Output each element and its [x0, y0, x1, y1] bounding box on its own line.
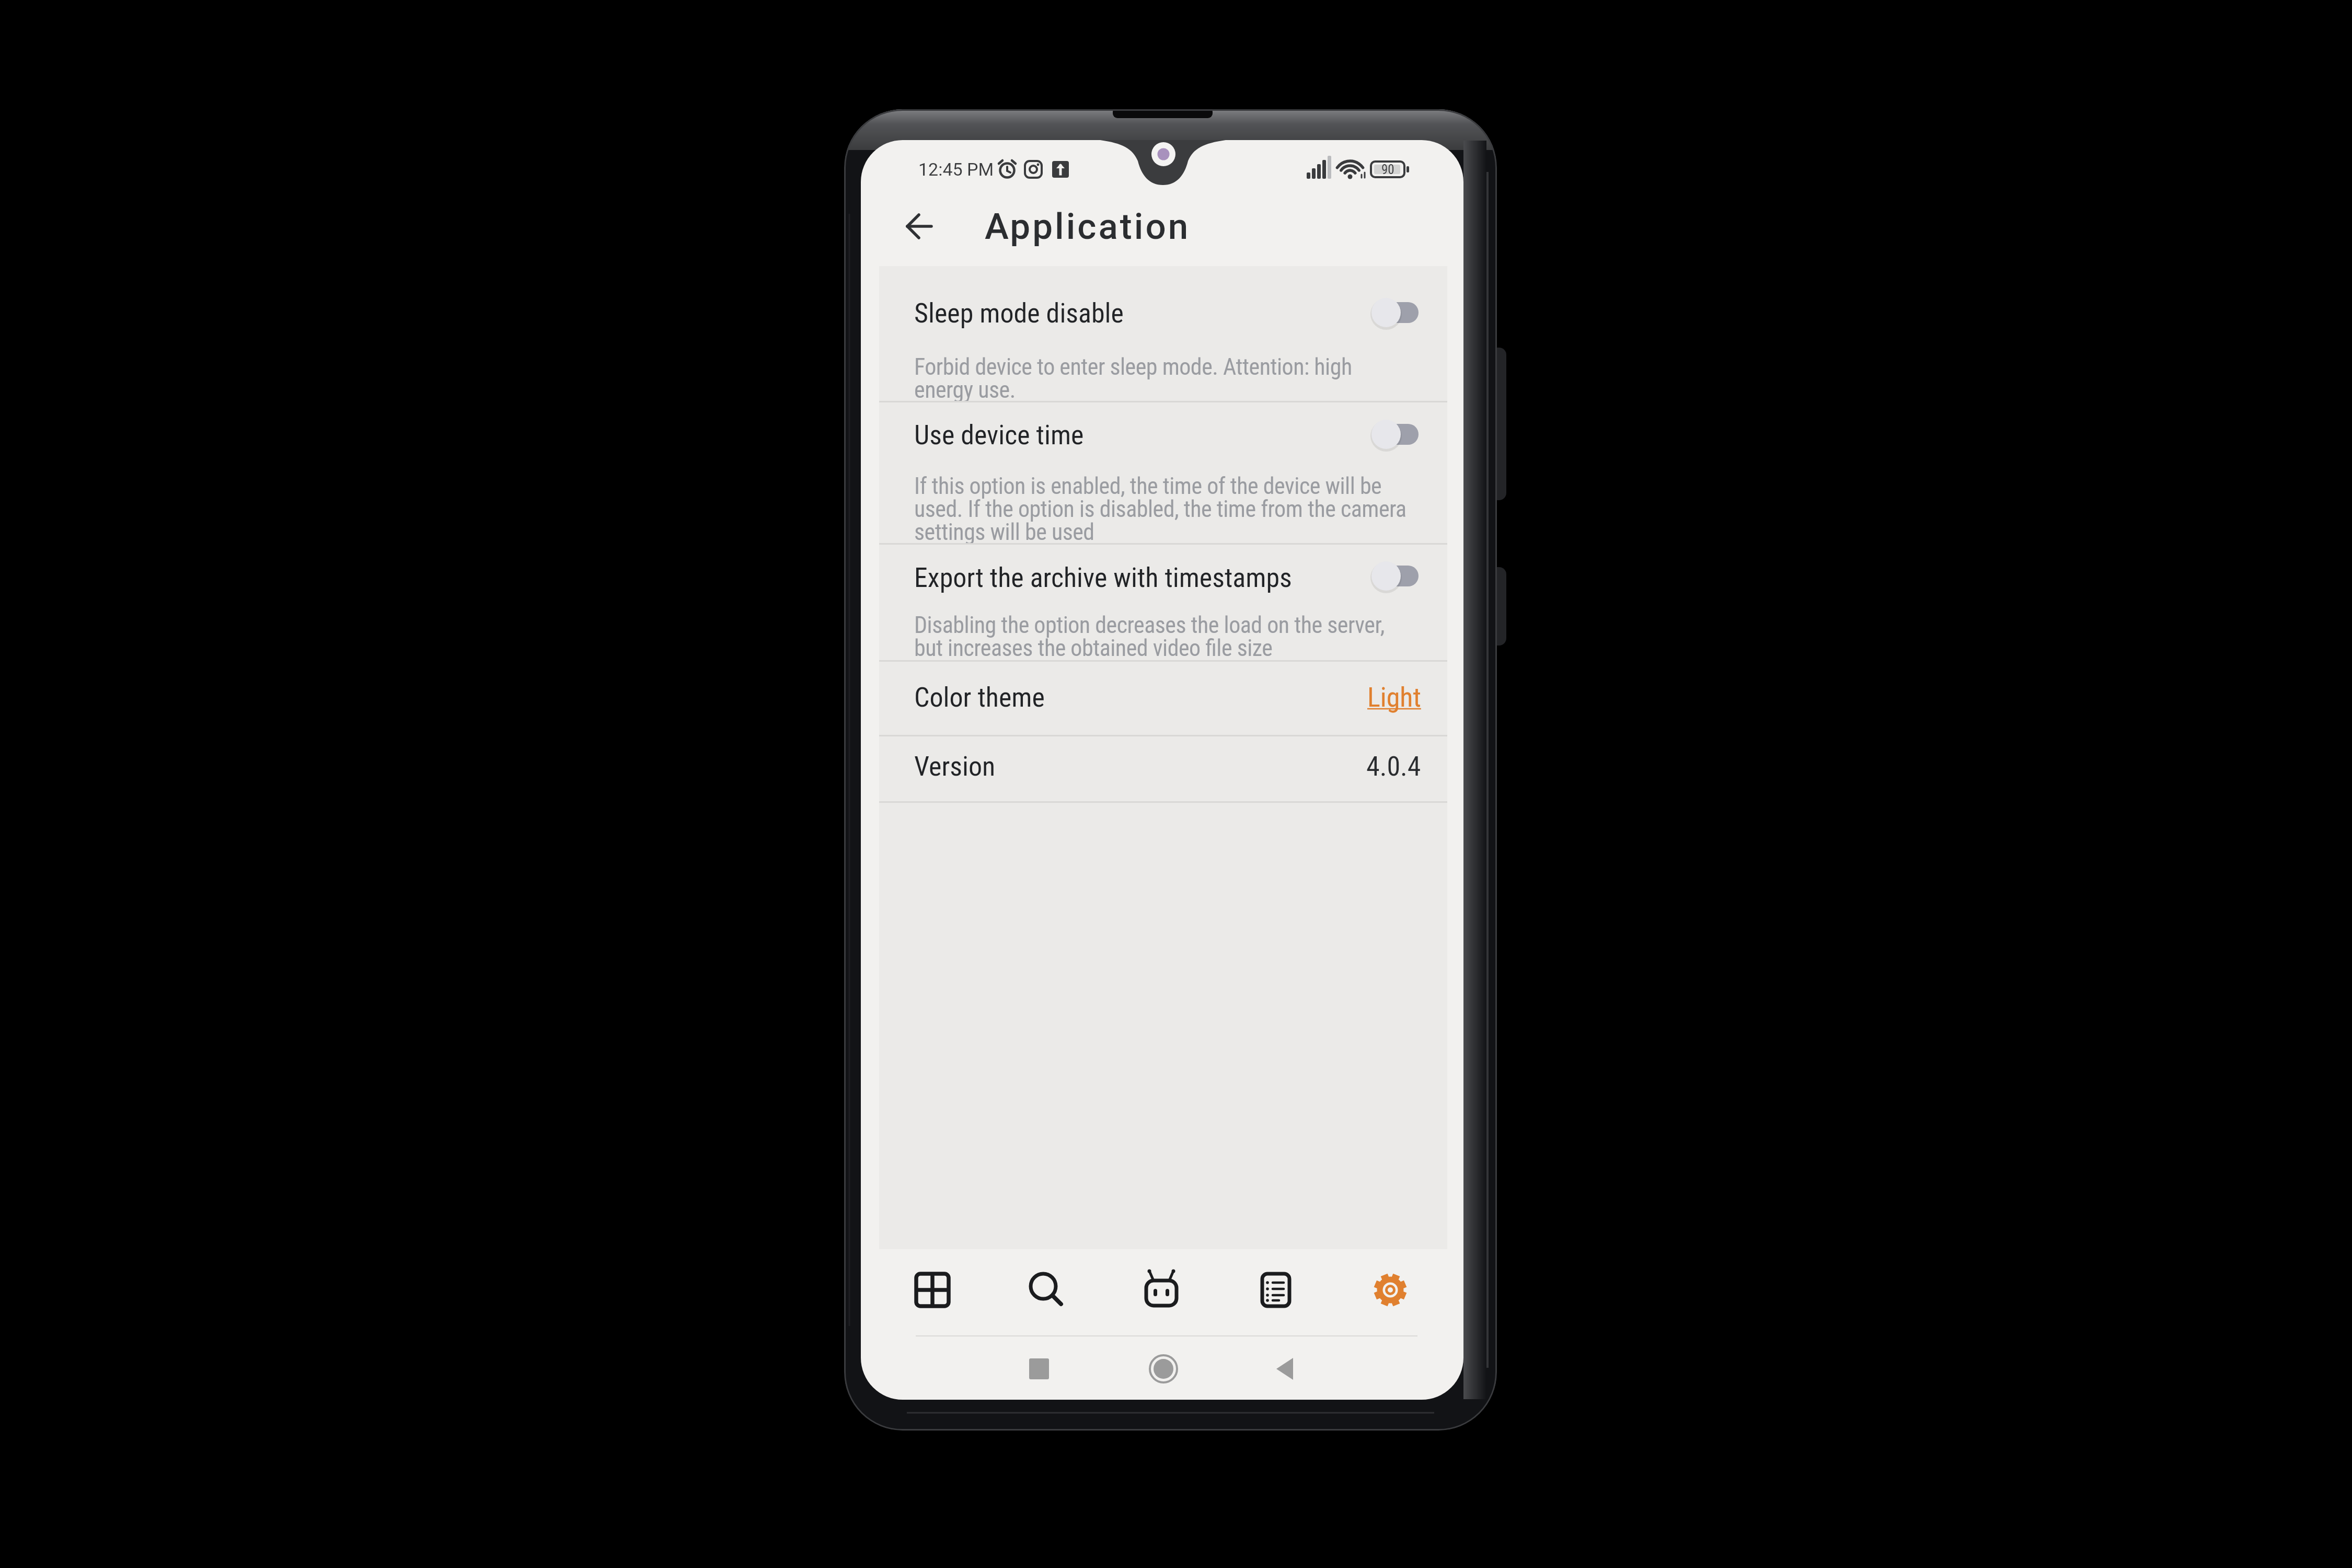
button[interactable] [1375, 424, 1419, 445]
button[interactable]: Color theme [914, 674, 1343, 721]
button[interactable] [1375, 302, 1419, 323]
button[interactable] [1348, 1248, 1432, 1332]
button[interactable] [1234, 1248, 1318, 1332]
button[interactable] [1120, 1248, 1203, 1332]
staticText: Forbid device to enter sleep mode. Atten… [914, 353, 1352, 381]
button[interactable] [892, 205, 947, 247]
button[interactable] [1005, 1248, 1089, 1332]
staticText: 12:45 PM [918, 159, 994, 180]
staticText: 4.0.4 [1366, 751, 1421, 782]
button[interactable]: Use device time [914, 411, 1343, 458]
button[interactable]: Sleep mode disable [914, 290, 1343, 337]
button[interactable] [1254, 1338, 1317, 1400]
staticText: used. If the option is disabled, the tim… [914, 495, 1406, 523]
staticText: Sleep mode disable [914, 297, 1124, 329]
staticText: Application [985, 205, 1191, 248]
button[interactable] [891, 1248, 974, 1332]
staticText: Use device time [914, 419, 1084, 451]
button[interactable] [1132, 1338, 1195, 1400]
staticText: energy use. [914, 376, 1016, 403]
button[interactable]: Light [1290, 674, 1421, 721]
staticText: 90 [1381, 162, 1394, 177]
staticText: Light [1367, 682, 1421, 713]
staticText: settings will be used [914, 518, 1094, 546]
staticText: If this option is enabled, the time of t… [914, 472, 1382, 500]
staticText: Version [914, 751, 996, 782]
button[interactable]: Version [914, 743, 1343, 790]
staticText: but increases the obtained video file si… [914, 635, 1273, 662]
staticText: Export the archive with timestamps [914, 562, 1292, 594]
button[interactable] [1375, 566, 1419, 586]
staticText: Disabling the option decreases the load … [914, 612, 1385, 639]
button[interactable] [1008, 1338, 1070, 1400]
staticText: Color theme [914, 682, 1045, 713]
button[interactable]: 4.0.4 [1290, 743, 1421, 790]
button[interactable]: Export the archive with timestamps [914, 554, 1343, 601]
